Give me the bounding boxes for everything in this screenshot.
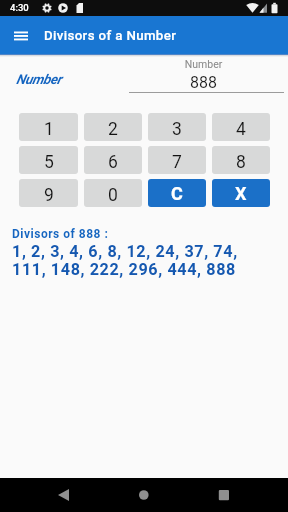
staticText: Number	[126, 58, 281, 70]
button[interactable]: X	[212, 179, 270, 207]
button[interactable]	[124, 478, 164, 512]
button[interactable]: 2	[84, 113, 142, 141]
staticText: C	[171, 183, 183, 204]
staticText: 4:30	[10, 2, 29, 13]
staticText: 888	[126, 73, 281, 92]
staticText: 8	[236, 152, 246, 173]
button[interactable]	[204, 478, 244, 512]
staticText: Divisors of 888 :	[12, 227, 109, 241]
button[interactable]: 3	[148, 113, 206, 141]
staticText: 7	[172, 152, 182, 173]
button[interactable]: 4	[212, 113, 270, 141]
staticText: 9	[44, 185, 54, 206]
staticText: X	[235, 183, 247, 204]
staticText: 4	[236, 119, 246, 140]
staticText: 1	[44, 119, 54, 140]
button[interactable]: 9	[19, 179, 78, 207]
button[interactable]	[8, 24, 34, 50]
staticText: 0	[108, 185, 118, 206]
button[interactable]: 0	[84, 179, 142, 207]
button[interactable]: Number	[129, 54, 284, 95]
staticText: Divisors of a Number	[44, 28, 177, 44]
button[interactable]: 7	[148, 146, 206, 174]
button[interactable]: 8	[212, 146, 270, 174]
button[interactable]: C	[148, 179, 206, 207]
staticText: 2	[108, 119, 118, 140]
button[interactable]	[44, 478, 84, 512]
staticText: 1, 2, 3, 4, 6, 8, 12, 24, 37, 74, 111, 1…	[12, 242, 238, 279]
staticText: 5	[44, 152, 54, 173]
staticText: 3	[172, 119, 182, 140]
button[interactable]: 6	[84, 146, 142, 174]
staticText: Number	[16, 71, 62, 87]
staticText: 6	[108, 152, 118, 173]
button[interactable]: 5	[19, 146, 78, 174]
button[interactable]: 1	[19, 113, 78, 141]
